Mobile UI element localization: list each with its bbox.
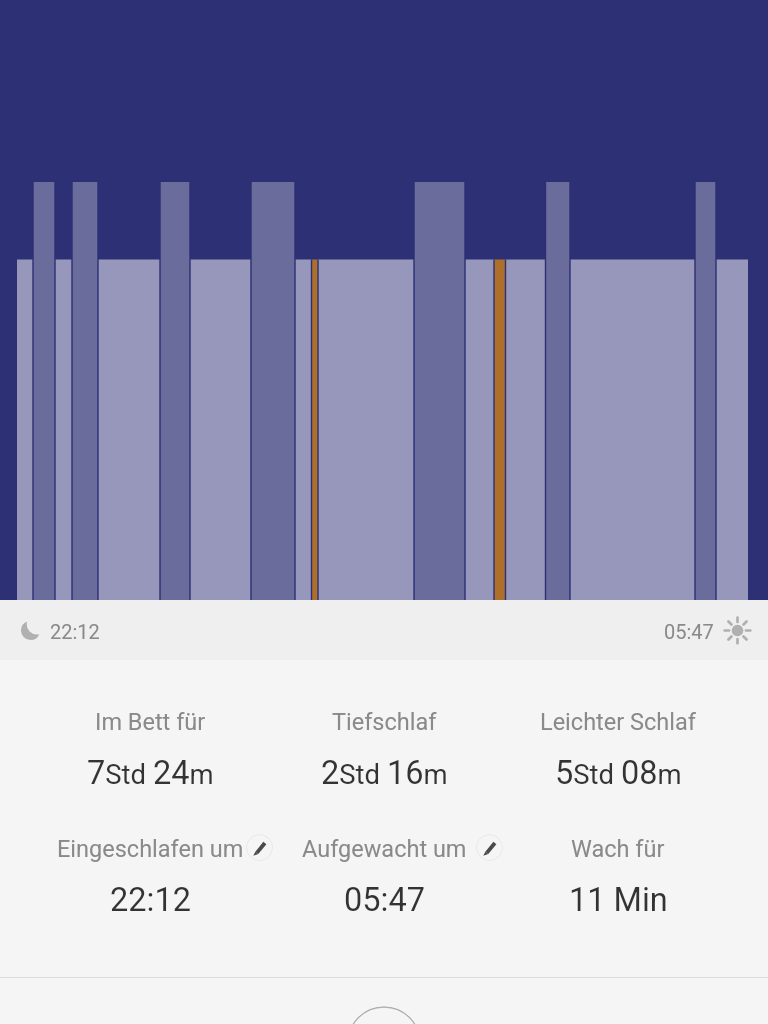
button[interactable]: Bearbeiten (246, 834, 273, 861)
staticText: Im Bett für (95, 708, 206, 736)
staticText: 11 Min (569, 881, 668, 919)
button[interactable]: Eingeschlafen um (33, 817, 267, 932)
staticText: 05:47 (664, 620, 714, 643)
staticText: 7Std 24m (87, 754, 214, 792)
button[interactable]: Schlafverlauf (0, 0, 768, 600)
button[interactable]: Leichter Schlaf (501, 690, 735, 805)
staticText: 5Std 08m (555, 754, 682, 792)
staticText: Leichter Schlaf (540, 708, 696, 736)
button[interactable]: Aufgewacht um (267, 817, 501, 932)
staticText: 2Std 16m (321, 754, 448, 792)
button[interactable]: Im Bett für (33, 690, 267, 805)
staticText: 05:47 (344, 881, 425, 919)
button[interactable]: Bearbeiten (476, 834, 503, 861)
other: Aufwachzeit (724, 617, 751, 644)
staticText: Tiefschlaf (332, 708, 437, 736)
staticText: Aufgewacht um (302, 835, 467, 863)
button[interactable]: Aufnahme starten (347, 1006, 421, 1024)
staticText: 22:12 (110, 881, 191, 919)
staticText: Eingeschlafen um (57, 835, 244, 863)
button[interactable]: Tiefschlaf (267, 690, 501, 805)
button[interactable]: Wach für (501, 817, 735, 932)
staticText: Wach für (571, 835, 665, 863)
other: Einschlafzeit (21, 621, 40, 640)
staticText: 22:12 (50, 620, 100, 643)
